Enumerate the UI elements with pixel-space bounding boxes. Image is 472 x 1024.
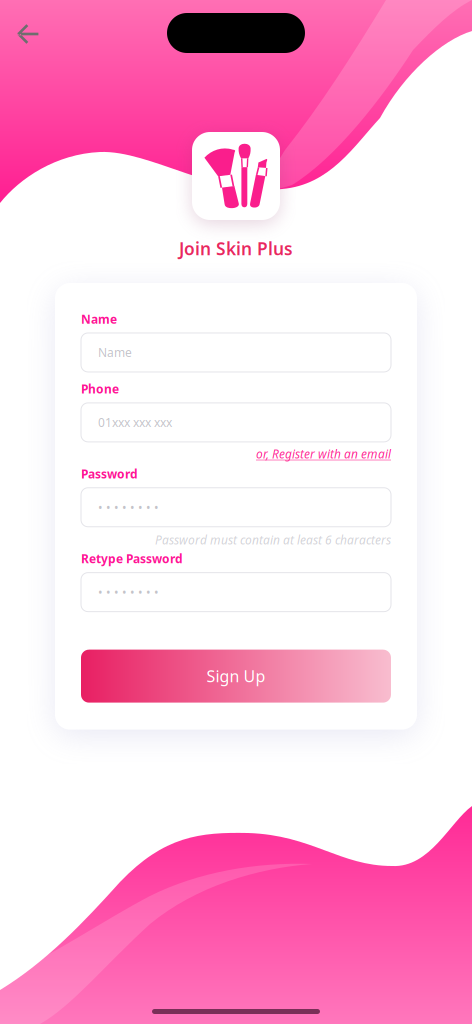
staticText: Password must contain at least 6 charact… [155, 532, 391, 548]
staticText: Join Skin Plus [179, 237, 293, 260]
staticText: Retype Password [81, 551, 183, 567]
button[interactable]: Back [6, 12, 50, 56]
staticText: Password [81, 466, 138, 482]
button[interactable]: or, Register with an email [256, 446, 391, 462]
staticText: • • • • • • • • [98, 499, 159, 515]
staticText: or, Register with an email [256, 446, 391, 462]
staticText: Name [98, 344, 132, 360]
button[interactable]: Sign Up [81, 650, 391, 703]
staticText: Sign Up [206, 665, 265, 687]
staticText: • • • • • • • • [98, 584, 159, 600]
staticText: Name [81, 311, 117, 327]
staticText: Phone [81, 381, 119, 397]
staticText: 01xxx xxx xxx [98, 414, 172, 430]
